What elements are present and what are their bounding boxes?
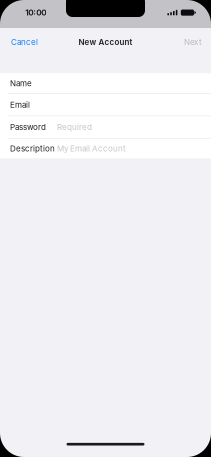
staticText: Next	[184, 37, 202, 47]
button[interactable]: Description	[0, 139, 211, 158]
button[interactable]: Cancel	[6, 30, 43, 54]
button[interactable]: Name	[0, 73, 211, 94]
staticText: Name	[10, 78, 32, 88]
button[interactable]: Email	[0, 94, 211, 116]
button[interactable]: Next	[179, 30, 207, 54]
staticText: Password	[10, 122, 46, 132]
staticText: Email	[10, 100, 30, 110]
staticText: 10:00	[25, 8, 46, 17]
staticText: Required	[57, 122, 92, 132]
staticText: New Account	[78, 37, 132, 47]
staticText: Cancel	[11, 37, 38, 47]
staticText: My Email Account	[57, 144, 126, 153]
button[interactable]: Password	[0, 116, 211, 139]
staticText: Description	[10, 144, 55, 153]
